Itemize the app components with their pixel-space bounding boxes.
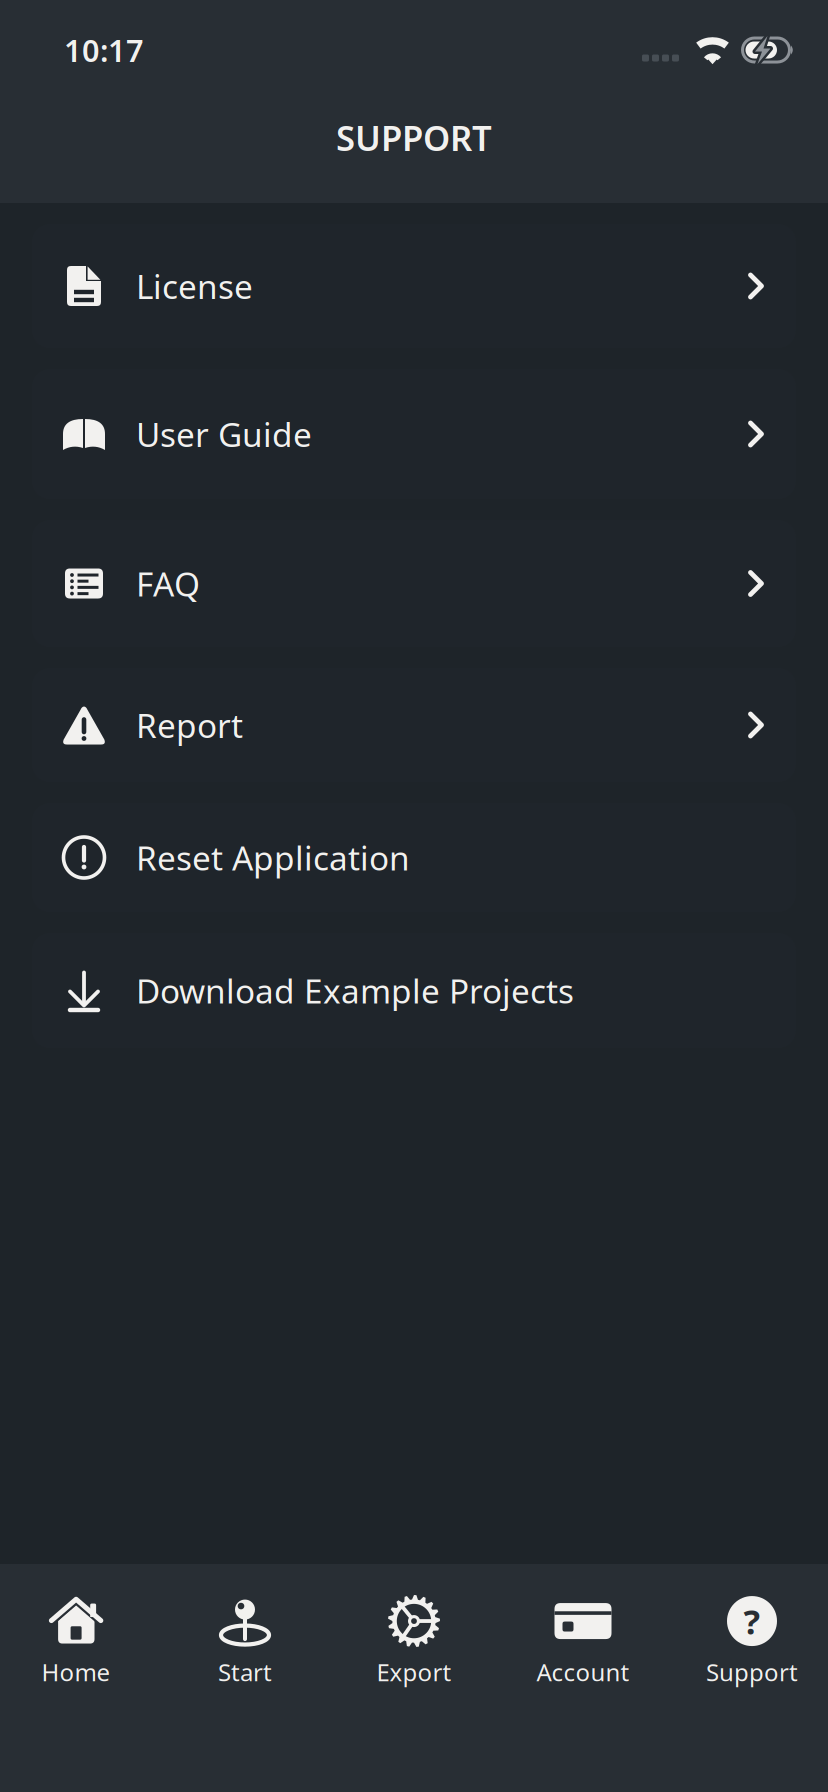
- staticText: Start: [218, 1656, 272, 1688]
- button[interactable]: User Guide: [32, 369, 796, 499]
- staticText: Reset Application: [136, 835, 410, 880]
- button[interactable]: Account: [507, 1588, 658, 1692]
- staticText: Export: [376, 1656, 451, 1688]
- button[interactable]: Home: [0, 1588, 151, 1692]
- button[interactable]: Export: [338, 1588, 489, 1692]
- button[interactable]: License: [32, 224, 796, 348]
- staticText: Report: [136, 703, 243, 747]
- button[interactable]: Report: [32, 668, 796, 782]
- staticText: Account: [536, 1656, 629, 1688]
- staticText: SUPPORT: [336, 114, 492, 160]
- staticText: FAQ: [136, 561, 200, 606]
- staticText: Support: [706, 1656, 798, 1688]
- staticText: Home: [41, 1656, 110, 1688]
- staticText: License: [136, 264, 253, 308]
- staticText: User Guide: [136, 412, 312, 456]
- button[interactable]: FAQ: [32, 520, 796, 647]
- staticText: 10:17: [64, 30, 144, 70]
- staticText: Download Example Projects: [136, 968, 574, 1013]
- button[interactable]: Start: [169, 1588, 320, 1692]
- staticText: ?: [743, 1598, 760, 1644]
- button[interactable]: Reset Application: [32, 803, 796, 912]
- button[interactable]: Download Example Projects: [32, 933, 796, 1048]
- button[interactable]: ?: [676, 1588, 827, 1692]
